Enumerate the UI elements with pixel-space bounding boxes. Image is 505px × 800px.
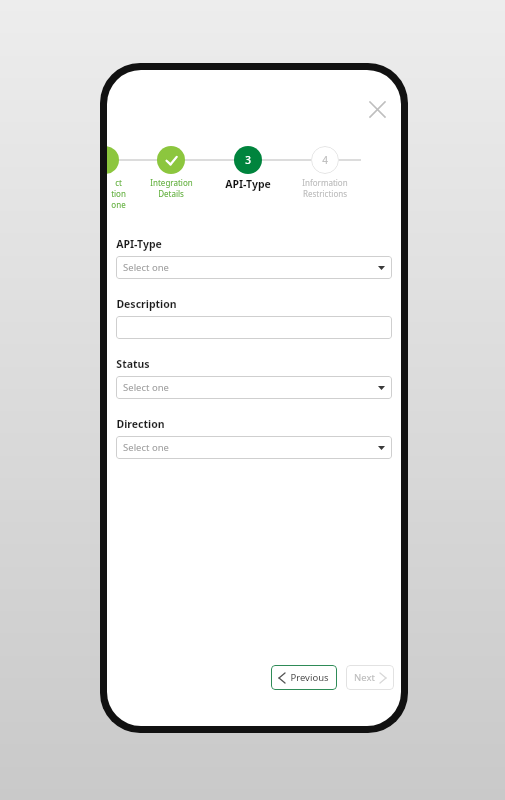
staticText: Status [116,357,150,371]
staticText: Direction [116,417,165,431]
button[interactable]: Step 1 completed [107,146,119,174]
button[interactable]: Step 2 Integration Details completed [157,146,185,174]
button[interactable]: Select one [116,436,392,459]
button[interactable] [116,316,392,339]
button[interactable]: Select one [116,376,392,399]
staticText: one [111,199,126,210]
staticText: API-Type [116,237,162,251]
staticText: 4 [322,153,328,167]
staticText: API-Type [225,177,271,191]
staticText: Previous [290,671,329,684]
button[interactable]: Step 3 API-Type current [234,146,262,174]
staticText: Select one [123,381,169,394]
staticText: Select one [123,441,169,454]
staticText: Restrictions [303,188,347,199]
staticText: ct [115,177,122,188]
button[interactable]: Previous [271,665,337,690]
button[interactable]: Step 4 Information Restrictions [311,146,339,174]
staticText: Integration [150,177,193,188]
staticText: Description [116,297,177,311]
staticText: Next [354,671,375,684]
staticText: Information [302,177,348,188]
staticText: Details [158,188,184,199]
staticText: tion [111,188,126,199]
button[interactable]: Select one [116,256,392,279]
button[interactable]: Next [346,665,394,690]
staticText: Select one [123,261,169,274]
button[interactable]: Close [361,93,393,125]
staticText: 3 [245,153,251,167]
